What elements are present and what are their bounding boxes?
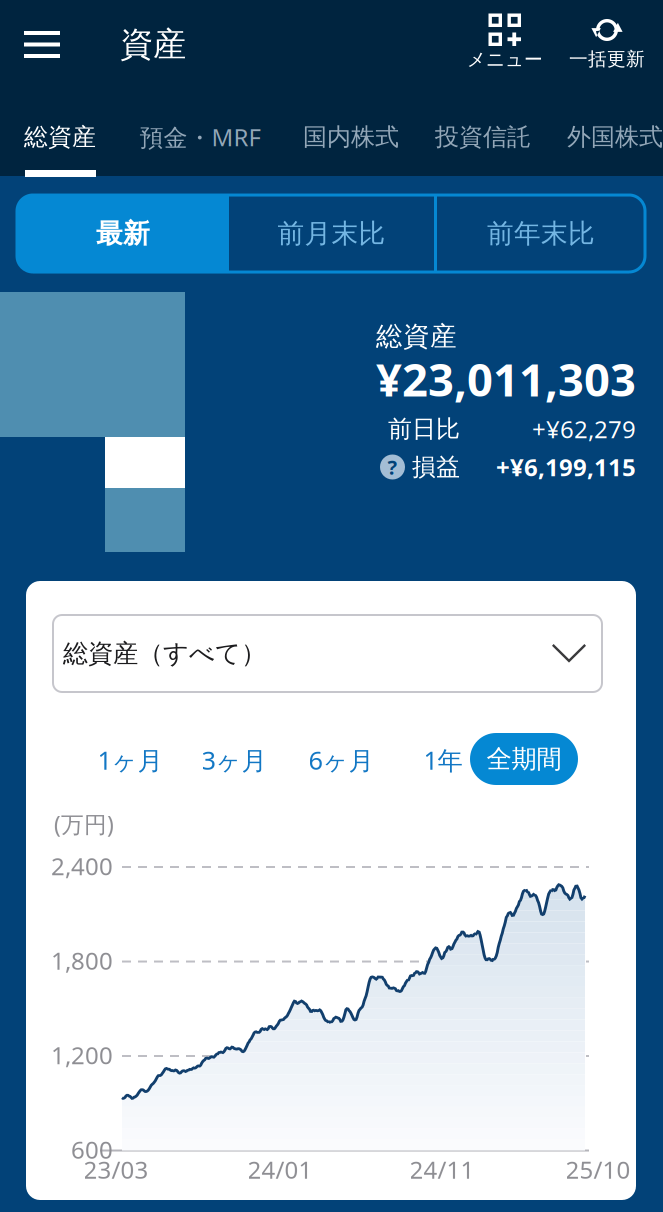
staticText: ¥23,011,303 bbox=[376, 349, 636, 409]
button[interactable]: Menu bbox=[24, 31, 60, 58]
staticText: 国内株式 bbox=[303, 122, 399, 152]
staticText: 1,200 bbox=[51, 1039, 113, 1071]
staticText: ? bbox=[387, 454, 397, 480]
staticText: 最新 bbox=[96, 217, 150, 250]
staticText: 1ヶ月 bbox=[97, 743, 162, 777]
button[interactable]: 全期間 bbox=[470, 733, 578, 785]
staticText: +¥6,199,115 bbox=[496, 451, 636, 483]
staticText: 預金・MRF bbox=[139, 121, 260, 153]
staticText: 外国株式 bbox=[567, 122, 663, 152]
button[interactable]: 総資産（すべて） bbox=[53, 615, 602, 692]
staticText: 24/11 bbox=[409, 1154, 474, 1185]
button[interactable]: 総資産 bbox=[0, 108, 120, 166]
staticText: 24/01 bbox=[247, 1154, 312, 1185]
staticText: 2,400 bbox=[51, 850, 113, 882]
button[interactable]: 前月末比 bbox=[229, 195, 434, 272]
button[interactable]: 前年末比 bbox=[437, 195, 645, 272]
button[interactable]: メニュー bbox=[455, 12, 555, 74]
button[interactable]: 投資信託 bbox=[417, 108, 549, 166]
staticText: 600 bbox=[71, 1134, 113, 1165]
staticText: 総資産（すべて） bbox=[63, 638, 266, 669]
staticText: 総資産 bbox=[24, 122, 96, 152]
button[interactable]: 預金・MRF bbox=[120, 108, 280, 166]
staticText: 全期間 bbox=[486, 743, 561, 774]
button[interactable]: 国内株式 bbox=[285, 108, 417, 166]
staticText: 一括更新 bbox=[569, 47, 645, 70]
staticText: +¥62,279 bbox=[532, 413, 636, 445]
staticText: 前日比 bbox=[388, 414, 460, 444]
staticText: 1,800 bbox=[51, 945, 113, 976]
button[interactable]: 一括更新 bbox=[557, 12, 657, 74]
button[interactable]: 3ヶ月 bbox=[192, 736, 276, 784]
staticText: (万円) bbox=[54, 809, 114, 839]
staticText: 前年末比 bbox=[487, 217, 595, 250]
button[interactable]: 1年 bbox=[406, 736, 480, 784]
staticText: 6ヶ月 bbox=[308, 743, 373, 777]
button[interactable]: 6ヶ月 bbox=[299, 736, 383, 784]
button[interactable]: 外国株式 bbox=[549, 108, 663, 166]
button[interactable]: 1ヶ月 bbox=[88, 736, 172, 784]
staticText: 資産 bbox=[120, 24, 186, 65]
staticText: 投資信託 bbox=[435, 122, 531, 152]
staticText: 1年 bbox=[423, 743, 462, 777]
button[interactable]: 最新 bbox=[17, 195, 229, 272]
staticText: 総資産 bbox=[376, 320, 457, 353]
staticText: 23/03 bbox=[83, 1154, 148, 1185]
staticText: 3ヶ月 bbox=[201, 743, 266, 777]
staticText: 前月末比 bbox=[277, 217, 385, 250]
staticText: 25/10 bbox=[565, 1154, 630, 1185]
staticText: メニュー bbox=[467, 48, 543, 71]
staticText: 損益 bbox=[405, 452, 460, 482]
